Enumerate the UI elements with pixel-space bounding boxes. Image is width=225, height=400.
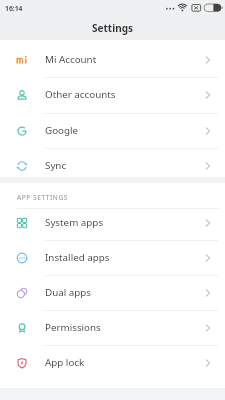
staticText: APP SETTINGS (17, 193, 68, 202)
button[interactable]: Permissions (0, 310, 225, 345)
button[interactable]: Installed apps (0, 240, 225, 275)
button[interactable]: System apps (0, 205, 225, 240)
button[interactable]: Sync (0, 148, 225, 183)
button[interactable]: Dual apps (0, 275, 225, 310)
staticText: Settings (92, 21, 133, 35)
staticText: Dual apps (45, 286, 92, 299)
staticText: Other accounts (45, 88, 116, 101)
staticText: Installed apps (45, 251, 110, 264)
staticText: Mi Account (45, 53, 97, 66)
staticText: System apps (45, 216, 104, 229)
staticText: Permissions (45, 321, 101, 334)
staticText: App lock (45, 356, 85, 369)
button[interactable]: Google (0, 113, 225, 148)
staticText: Sync (45, 159, 67, 172)
button[interactable]: Other accounts (0, 77, 225, 112)
staticText: 16:14 (5, 4, 23, 13)
button[interactable]: Mi Account (0, 42, 225, 77)
button[interactable]: App lock (0, 345, 225, 380)
staticText: Google (45, 124, 79, 137)
